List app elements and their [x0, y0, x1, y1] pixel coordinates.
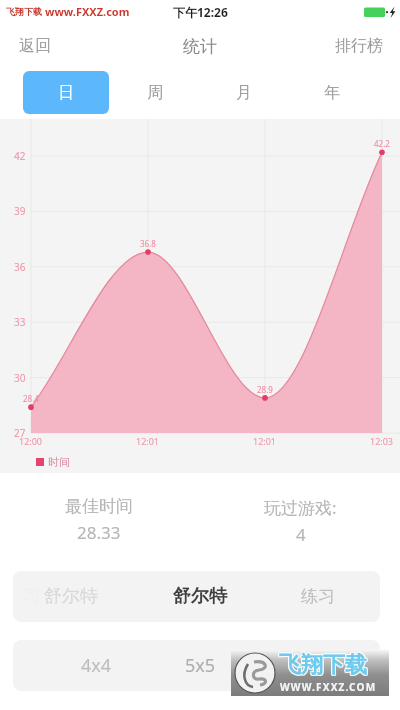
staticText: 返回	[19, 36, 51, 56]
staticText: 42.2	[374, 138, 390, 149]
staticText: 30	[14, 371, 26, 385]
button[interactable]: 返回	[7, 30, 63, 62]
staticText: 飞翔下载	[278, 650, 366, 678]
staticText: 舒尔特	[44, 585, 98, 608]
staticText: 飞翔下载	[279, 650, 367, 678]
staticText: 飞翔下载	[279, 652, 367, 680]
staticText: 周	[147, 83, 163, 103]
button[interactable]: 4x4	[13, 640, 380, 691]
staticText: 28.33	[77, 521, 121, 544]
staticText: 36	[14, 260, 26, 274]
button[interactable]: 日	[23, 71, 109, 114]
staticText: 最佳时间	[65, 496, 133, 517]
staticText: 12:01	[136, 435, 160, 447]
staticText: 12:01	[253, 435, 277, 447]
staticText: 飞翔下载	[278, 651, 366, 679]
staticText: 28.4	[23, 393, 39, 404]
staticText: 练习	[301, 586, 335, 607]
staticText: 飞翔下载	[278, 652, 366, 680]
staticText: 12:03	[370, 435, 394, 447]
staticText: 排行榜	[335, 36, 383, 56]
staticText: 28.9	[257, 384, 273, 395]
staticText: 飞翔下载	[280, 651, 368, 679]
staticText: www.FXXZ.com	[45, 4, 130, 19]
staticText: 月	[236, 83, 252, 103]
staticText: 飞翔下载	[280, 652, 368, 680]
staticText: 6x6	[289, 653, 320, 678]
button[interactable]: 习	[13, 571, 380, 622]
staticText: 飞翔下载	[279, 651, 367, 679]
staticText: 39	[14, 204, 26, 218]
staticText: WWW.FXXZ.COM	[280, 680, 377, 694]
staticText: 5x5	[185, 653, 216, 678]
staticText: 下午12:26	[173, 4, 228, 20]
staticText: 玩过游戏:	[264, 496, 337, 519]
staticText: 42	[14, 149, 26, 163]
staticText: 4x4	[81, 653, 112, 678]
staticText: 舒尔特	[173, 585, 227, 608]
staticText: 33	[14, 315, 26, 329]
staticText: 12:00	[19, 435, 43, 447]
staticText: 飞翔下载	[280, 650, 368, 678]
staticText: 飞翔下载	[6, 6, 42, 17]
staticText: 4	[296, 523, 306, 546]
staticText: 统计	[183, 36, 217, 57]
button[interactable]: 排行榜	[323, 30, 395, 62]
button[interactable]: 月	[201, 71, 287, 114]
staticText: 年	[324, 83, 340, 103]
staticText: 27	[14, 426, 26, 440]
staticText: 日	[58, 83, 74, 103]
button[interactable]: 周	[112, 71, 198, 114]
button[interactable]: 年	[289, 71, 375, 114]
staticText: 36.8	[140, 238, 156, 249]
staticText: 时间	[48, 455, 70, 469]
